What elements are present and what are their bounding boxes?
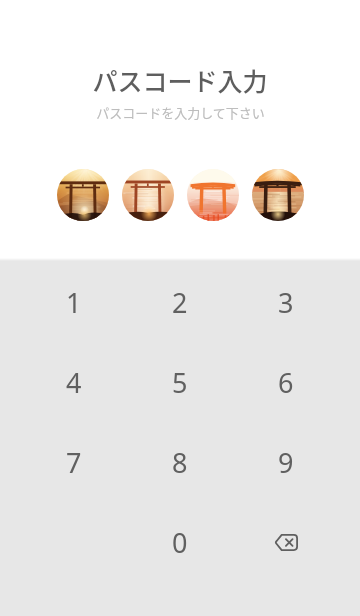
button[interactable]: 9 — [233, 422, 339, 502]
staticText: 8 — [172, 444, 188, 481]
button[interactable]: Passcode dot 3 — [187, 169, 239, 221]
button[interactable]: 3 — [233, 262, 339, 342]
staticText: 6 — [278, 364, 294, 401]
staticText: 2 — [172, 284, 188, 321]
button[interactable]: 0 — [127, 502, 233, 582]
staticText: 5 — [172, 364, 188, 401]
staticText: パスコードを入力して下さい — [96, 103, 265, 122]
staticText: 7 — [66, 444, 82, 481]
staticText: 0 — [172, 524, 188, 561]
button[interactable]: Passcode dot 2 — [122, 169, 174, 221]
button[interactable]: 2 — [127, 262, 233, 342]
staticText: 4 — [66, 364, 82, 401]
button[interactable]: 8 — [127, 422, 233, 502]
other: Delete — [265, 521, 307, 563]
button[interactable]: Passcode dot 1 — [57, 169, 109, 221]
button[interactable]: 1 — [21, 262, 127, 342]
button[interactable]: 7 — [21, 422, 127, 502]
button[interactable]: Passcode dot 4 — [252, 169, 304, 221]
staticText: 1 — [66, 284, 82, 321]
button[interactable]: 5 — [127, 342, 233, 422]
button[interactable]: Delete — [233, 502, 339, 582]
button[interactable]: 4 — [21, 342, 127, 422]
button[interactable]: 6 — [233, 342, 339, 422]
staticText: パスコード入力 — [92, 62, 268, 98]
staticText: 3 — [278, 284, 294, 321]
staticText: 9 — [278, 444, 294, 481]
